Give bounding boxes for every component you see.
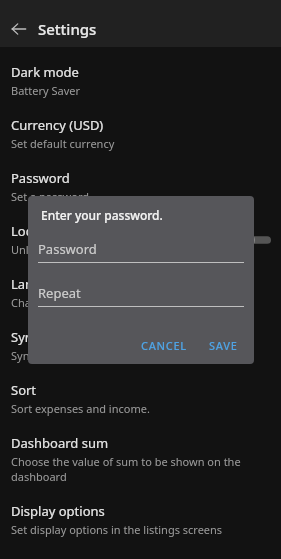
staticText: Currency (USD)	[11, 116, 104, 134]
staticText: Sort expenses and income.	[11, 401, 150, 416]
button[interactable]: SAVE	[201, 333, 246, 358]
staticText: Set display options in the listings scre…	[11, 522, 223, 537]
staticText: Display options	[11, 502, 105, 520]
button[interactable]: Sync	[0, 319, 281, 372]
staticText: Set a password	[11, 189, 89, 204]
staticText: Battery Saver	[11, 83, 81, 98]
button[interactable]: Dark mode	[0, 54, 281, 107]
button[interactable]: Lock app	[0, 213, 281, 266]
staticText: Sync	[11, 328, 40, 346]
staticText: Dashboard sum	[11, 434, 109, 452]
button[interactable]: Password	[0, 160, 281, 213]
staticText: Password	[38, 240, 97, 258]
staticText: Password	[11, 169, 70, 187]
staticText: Dark mode	[11, 63, 79, 81]
button[interactable]: Repeat	[38, 284, 244, 307]
staticText: Lock app	[11, 222, 66, 240]
staticText: Unlock with password	[11, 242, 125, 257]
button[interactable]: Password	[38, 240, 244, 263]
staticText: Sort	[11, 381, 37, 399]
button[interactable]: CANCEL	[133, 333, 195, 358]
staticText: Choose the value of sum to be shown on t…	[11, 454, 265, 484]
staticText: Sync app data	[11, 348, 84, 363]
button[interactable]: Back	[0, 10, 38, 47]
button[interactable]: Display options	[0, 493, 281, 546]
staticText: Change app language	[11, 295, 125, 310]
button[interactable]: Sort	[0, 372, 281, 425]
staticText: CANCEL	[141, 338, 187, 353]
staticText: SAVE	[209, 338, 238, 353]
staticText: Language	[11, 275, 72, 293]
staticText: Repeat	[38, 284, 81, 302]
button[interactable]: Language	[0, 266, 281, 319]
staticText: Set default currency	[11, 136, 115, 151]
button[interactable]: Currency (USD)	[0, 107, 281, 160]
staticText: Settings	[38, 19, 97, 39]
button[interactable]: Dashboard sum	[0, 425, 281, 493]
staticText: Enter your password.	[41, 207, 163, 223]
